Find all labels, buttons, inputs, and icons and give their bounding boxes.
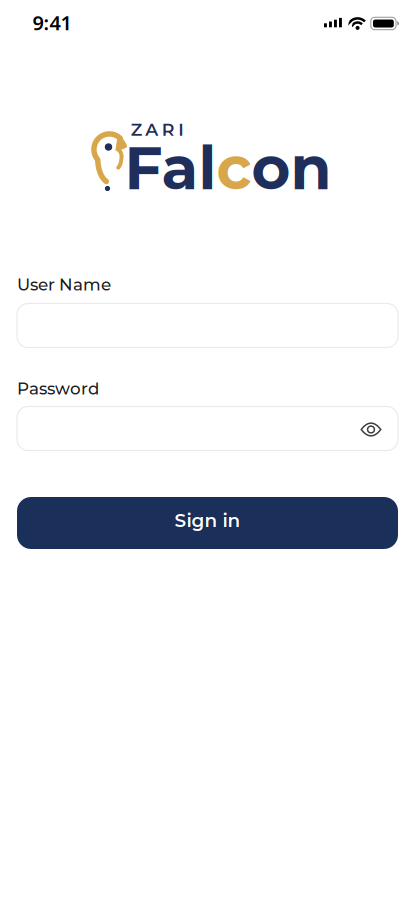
- staticText: 9:41: [32, 9, 71, 36]
- button[interactable]: Password: [17, 406, 398, 450]
- button[interactable]: Show password: [354, 412, 388, 446]
- staticText: User Name: [17, 274, 111, 295]
- button[interactable]: Sign in: [17, 497, 398, 549]
- staticText: c: [216, 132, 251, 204]
- staticText: Fal: [124, 132, 216, 204]
- staticText: on: [251, 132, 331, 204]
- staticText: R: [162, 119, 175, 140]
- button[interactable]: User Name: [17, 303, 398, 347]
- staticText: Password: [17, 378, 99, 399]
- staticText: Z: [131, 119, 142, 140]
- staticText: Sign in: [174, 509, 240, 532]
- staticText: A: [145, 119, 158, 140]
- staticText: I: [178, 119, 184, 140]
